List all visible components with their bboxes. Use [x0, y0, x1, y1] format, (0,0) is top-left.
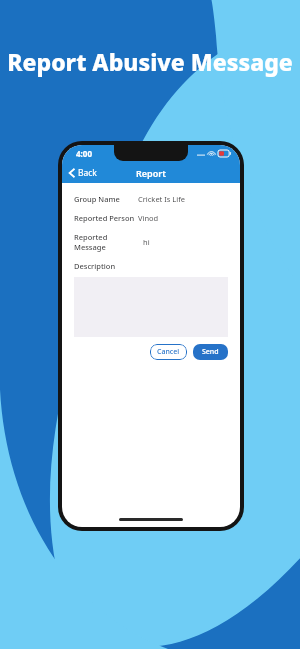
staticText: Reported Person	[74, 213, 138, 223]
button[interactable]: Back	[62, 164, 103, 182]
button[interactable]: Reported Person	[74, 213, 228, 223]
staticText: Back	[78, 167, 97, 179]
staticText: hi	[143, 237, 150, 247]
staticText: Cricket Is Life	[138, 194, 186, 204]
button[interactable]: Reported Message	[74, 232, 228, 252]
other: Back	[69, 168, 75, 178]
staticText: Cancel	[157, 347, 180, 357]
button[interactable]: Send	[193, 344, 228, 360]
staticText: Group Name	[74, 194, 138, 204]
staticText: Send	[202, 347, 219, 357]
staticText: Report Abusive Message	[7, 46, 293, 77]
button[interactable]: Group Name	[74, 194, 228, 204]
staticText: Description	[74, 261, 116, 271]
staticText: 4:00	[76, 148, 92, 159]
staticText: Reported Message	[74, 232, 138, 252]
staticText: Report	[136, 167, 166, 179]
button[interactable]: Cancel	[150, 344, 187, 360]
staticText: Vinod	[138, 213, 159, 223]
